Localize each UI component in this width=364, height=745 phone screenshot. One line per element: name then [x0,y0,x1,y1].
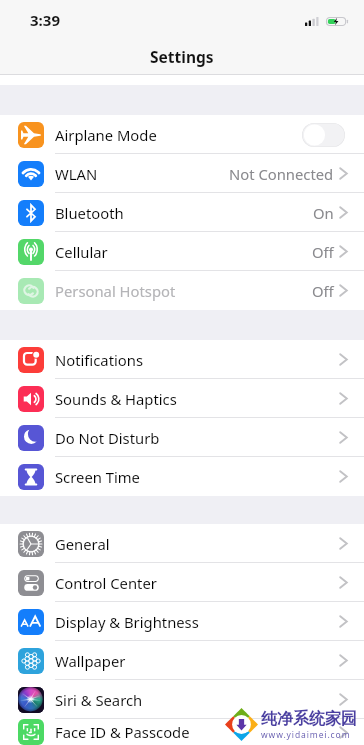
staticText: Off [312,281,334,301]
staticText: Notifications [55,350,144,370]
button[interactable]: Airplane Mode [0,115,364,154]
staticText: Airplane Mode [55,125,157,145]
button[interactable]: Cellular [0,232,364,271]
staticText: Wallpaper [55,651,126,671]
button[interactable]: Airplane Mode toggle [302,123,345,147]
staticText: WLAN [55,164,98,184]
button[interactable]: Sounds & Haptics [0,379,364,418]
staticText: Control Center [55,573,157,593]
staticText: Siri & Search [55,690,143,710]
staticText: 纯净系统家园 [261,709,357,729]
button[interactable]: Screen Time [0,457,364,496]
button[interactable]: WLAN [0,154,364,193]
staticText: Cellular [55,242,108,262]
staticText: Sounds & Haptics [55,389,177,409]
staticText: www.yidaimei.com [261,729,351,741]
staticText: Personal Hotspot [55,281,176,301]
button[interactable]: Control Center [0,563,364,602]
staticText: Screen Time [55,467,140,487]
button[interactable]: Wallpaper [0,641,364,680]
button[interactable]: Display & Brightness [0,602,364,641]
staticText: Settings [150,46,214,67]
staticText: Off [312,242,334,262]
button[interactable]: Do Not Disturb [0,418,364,457]
staticText: Bluetooth [55,203,124,223]
staticText: Do Not Disturb [55,428,160,448]
button[interactable]: Face ID & Passcode [0,719,364,745]
staticText: Face ID & Passcode [55,722,190,742]
staticText: Not Connected [229,164,334,184]
button[interactable]: Siri & Search [0,680,364,719]
button[interactable]: Personal Hotspot [0,271,364,310]
staticText: Display & Brightness [55,612,199,632]
staticText: On [313,203,334,223]
button[interactable]: Notifications [0,340,364,379]
staticText: 3:39 [30,10,60,30]
staticText: General [55,534,110,554]
button[interactable]: Bluetooth [0,193,364,232]
button[interactable]: General [0,524,364,563]
